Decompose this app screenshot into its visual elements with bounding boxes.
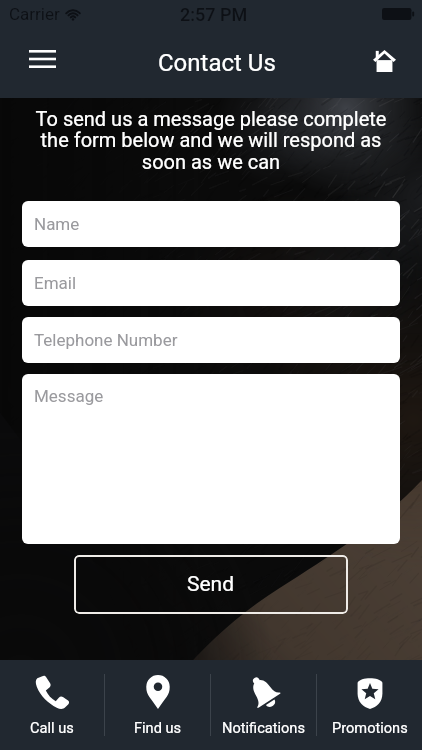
- staticText: 2:57 PM: [180, 4, 248, 25]
- button[interactable]: Open navigation menu: [20, 37, 64, 81]
- button[interactable]: Find us: [105, 660, 210, 750]
- button[interactable]: Telephone Number: [22, 317, 400, 363]
- button[interactable]: Name: [22, 201, 400, 247]
- staticText: Find us: [134, 719, 182, 736]
- button[interactable]: Email: [22, 260, 400, 306]
- button[interactable]: Notifications: [211, 660, 316, 750]
- staticText: Carrier: [9, 4, 60, 24]
- staticText: Promotions: [332, 719, 408, 736]
- staticText: Send: [187, 572, 235, 597]
- staticText: Call us: [30, 719, 74, 736]
- button[interactable]: Home: [362, 39, 406, 83]
- staticText: Contact Us: [158, 49, 276, 77]
- staticText: Telephone Number: [34, 330, 178, 350]
- staticText: Email: [34, 273, 77, 293]
- button[interactable]: Send: [74, 555, 348, 614]
- staticText: Message: [34, 386, 104, 406]
- button[interactable]: Call us: [0, 660, 104, 750]
- staticText: Name: [34, 214, 80, 234]
- button[interactable]: Promotions: [317, 660, 422, 750]
- staticText: To send us a message please complete the…: [26, 107, 396, 174]
- staticText: Notifications: [222, 719, 305, 736]
- button[interactable]: Message: [22, 374, 400, 544]
